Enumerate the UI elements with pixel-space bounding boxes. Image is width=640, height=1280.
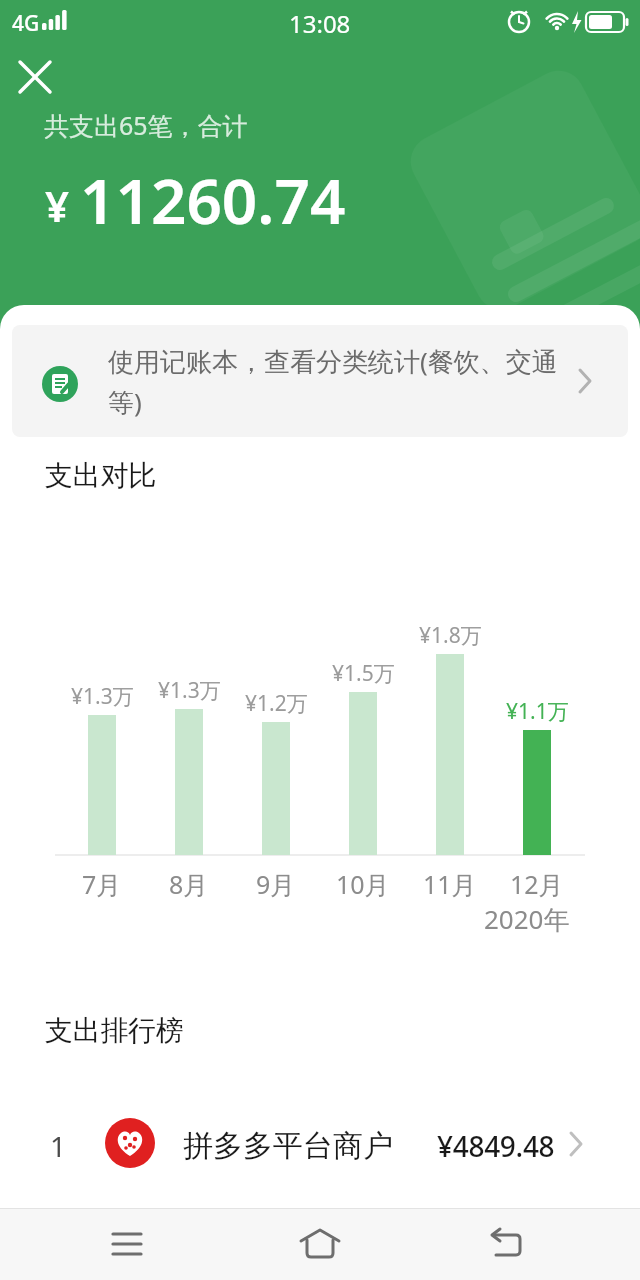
staticText: 8月 (169, 867, 209, 901)
staticText: 1 (50, 1127, 67, 1165)
button[interactable]: 1 (0, 1103, 640, 1183)
staticText: ¥4849.48 (437, 1127, 555, 1165)
button[interactable] (474, 1212, 538, 1276)
staticText: ¥1.2万 (245, 689, 308, 718)
staticText: 支出排行榜 (45, 1013, 184, 1048)
staticText: ¥1.1万 (506, 697, 569, 726)
staticText: ¥1.3万 (158, 676, 221, 705)
staticText: 11260.74 (80, 158, 346, 242)
staticText: ¥1.3万 (71, 682, 134, 711)
staticText: 支出对比 (45, 458, 156, 493)
staticText: 拼多多平台商户 (183, 1127, 393, 1165)
staticText: ¥ (45, 177, 80, 234)
staticText: 13:08 (289, 7, 351, 40)
staticText: ¥1.8万 (419, 621, 482, 650)
staticText: 共支出65笔，合计 (44, 108, 248, 142)
staticText: 10月 (336, 867, 390, 901)
staticText: 4G (12, 9, 40, 38)
button[interactable]: 使用记账本，查看分类统计(餐饮、交通 等) (12, 325, 628, 437)
staticText: ¥1.5万 (332, 659, 395, 688)
staticText: 使用记账本，查看分类统计(餐饮、交通 等) (108, 343, 558, 420)
button[interactable] (10, 50, 62, 102)
staticText: 12月 (510, 867, 564, 901)
staticText: 2020年 (484, 901, 570, 937)
staticText: 7月 (82, 867, 122, 901)
staticText: 9月 (256, 867, 296, 901)
button[interactable] (95, 1212, 159, 1276)
button[interactable] (288, 1212, 352, 1276)
staticText: 11月 (423, 867, 477, 901)
